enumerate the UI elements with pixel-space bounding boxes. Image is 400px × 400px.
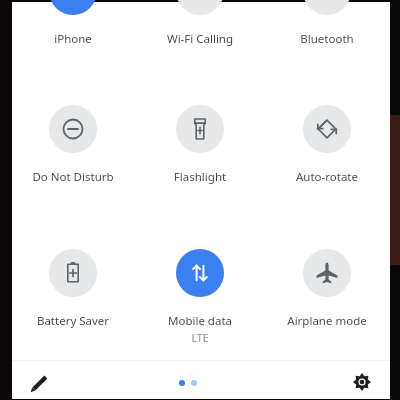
- staticText: Battery Saver: [14, 313, 132, 329]
- button[interactable]: Bluetooth: [268, 0, 386, 47]
- button[interactable]: Airplane mode: [268, 249, 386, 329]
- staticText: Do Not Disturb: [14, 169, 132, 185]
- staticText: LTE: [141, 331, 259, 345]
- staticText: Bluetooth: [268, 31, 386, 47]
- button[interactable]: Auto-rotate: [268, 105, 386, 185]
- staticText: Airplane mode: [268, 313, 386, 329]
- staticText: Flashlight: [141, 169, 259, 185]
- button[interactable]: Settings: [340, 359, 384, 399]
- button[interactable]: iPhone: [14, 0, 132, 47]
- button[interactable]: Edit tiles: [18, 359, 62, 399]
- button[interactable]: Flashlight: [141, 105, 259, 185]
- staticText: Auto-rotate: [268, 169, 386, 185]
- button[interactable]: Wi-Fi Calling: [141, 0, 259, 47]
- button[interactable]: Battery Saver: [14, 249, 132, 329]
- staticText: Mobile data: [141, 313, 259, 329]
- button[interactable]: Mobile data: [141, 249, 259, 345]
- staticText: Wi-Fi Calling: [141, 31, 259, 47]
- button[interactable]: Do Not Disturb: [14, 105, 132, 185]
- staticText: iPhone: [14, 31, 132, 47]
